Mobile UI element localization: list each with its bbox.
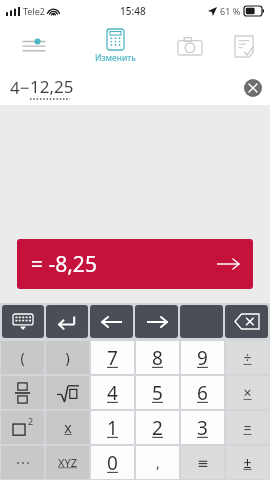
staticText: = -8,25 <box>31 250 97 279</box>
button[interactable]: ÷ <box>226 341 269 374</box>
button[interactable]: ( <box>1 341 44 374</box>
button[interactable]: ≡ <box>181 446 224 479</box>
button[interactable]: × <box>226 376 269 409</box>
button[interactable]: = <box>226 411 269 444</box>
staticText: Изменить <box>95 52 136 64</box>
staticText: ≡ <box>197 455 209 471</box>
button[interactable]: blank <box>180 305 223 338</box>
button[interactable]: Camera <box>162 22 218 70</box>
staticText: 15:48 <box>120 4 146 18</box>
staticText: 12,25 <box>30 75 74 98</box>
staticText: 6 <box>197 380 208 406</box>
button[interactable]: 3 <box>181 411 224 444</box>
button[interactable]: 7 <box>91 341 134 374</box>
button[interactable]: right <box>135 305 178 338</box>
button[interactable]: ) <box>46 341 89 374</box>
staticText: ( <box>20 348 25 367</box>
button[interactable]: sqrt <box>46 376 89 409</box>
button[interactable]: left <box>90 305 133 338</box>
staticText: Tele2 <box>23 5 45 17</box>
staticText: ÷ <box>243 348 252 367</box>
staticText: 4 <box>107 380 118 406</box>
button[interactable]: frac <box>1 376 44 409</box>
staticText: 9 <box>197 345 208 371</box>
staticText: , <box>156 453 160 472</box>
staticText: 7 <box>107 345 118 371</box>
button[interactable]: enter <box>46 305 88 338</box>
button[interactable]: x <box>46 411 89 444</box>
staticText: 1 <box>107 415 118 441</box>
button[interactable]: 6 <box>181 376 224 409</box>
button[interactable]: ± <box>226 446 269 479</box>
button[interactable]: Изменить <box>68 22 162 70</box>
button[interactable]: 4 <box>91 376 134 409</box>
button[interactable]: 5 <box>136 376 179 409</box>
button[interactable]: XYZ <box>46 446 89 479</box>
staticText: 2 <box>152 415 163 441</box>
staticText: 4− <box>10 76 30 99</box>
staticText: ± <box>243 453 252 472</box>
staticText: 2 <box>28 415 34 427</box>
button[interactable]: 0 <box>91 446 134 479</box>
staticText: 0 <box>107 450 118 476</box>
button[interactable]: 8 <box>136 341 179 374</box>
button[interactable]: 2 <box>136 411 179 444</box>
staticText: ) <box>65 348 70 367</box>
button[interactable]: Settings <box>0 22 68 70</box>
button[interactable]: del <box>225 305 268 338</box>
button[interactable]: 1 <box>91 411 134 444</box>
staticText: × <box>243 383 252 402</box>
staticText: 5 <box>152 380 163 406</box>
button[interactable]: Tasks <box>218 22 270 70</box>
staticText: 8 <box>152 345 163 371</box>
button[interactable]: = -8,25 <box>17 239 253 289</box>
button[interactable]: 9 <box>181 341 224 374</box>
staticText: 61 % <box>220 5 241 17</box>
button[interactable]: Clear <box>244 79 262 97</box>
button[interactable]: pow <box>1 411 44 444</box>
button[interactable]: kbd <box>2 305 44 338</box>
button[interactable]: ... <box>1 446 44 479</box>
staticText: x <box>64 418 72 437</box>
staticText: 3 <box>197 415 208 441</box>
staticText: XYZ <box>58 455 77 470</box>
button[interactable]: , <box>136 446 179 479</box>
staticText: = <box>243 418 252 437</box>
